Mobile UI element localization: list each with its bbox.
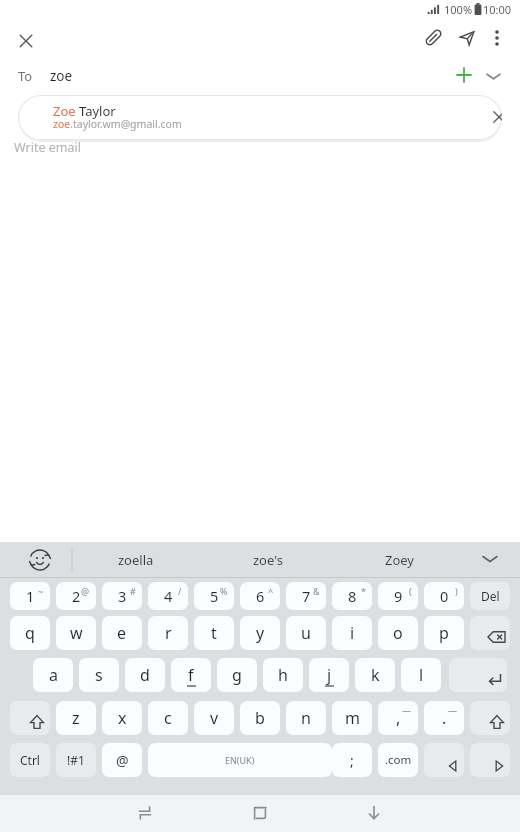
button[interactable]: Zoe Taylor (18, 95, 502, 140)
button[interactable] (485, 24, 509, 52)
staticText: t (211, 622, 217, 644)
button[interactable]: k (355, 658, 395, 692)
button[interactable]: Del (470, 582, 510, 610)
button[interactable]: 8 (332, 582, 372, 610)
button[interactable]: e (102, 616, 142, 650)
staticText: zoe (50, 67, 73, 85)
staticText: ) (455, 585, 458, 597)
button[interactable]: zoella (80, 542, 192, 577)
button[interactable] (480, 61, 506, 89)
button[interactable]: y (240, 616, 280, 650)
button[interactable]: p (424, 616, 464, 650)
button[interactable]: Ctrl (10, 743, 50, 777)
button[interactable]: g (217, 658, 257, 692)
button[interactable] (470, 616, 510, 650)
staticText: 6 (256, 586, 265, 606)
staticText: — (402, 704, 412, 716)
button[interactable]: r (148, 616, 188, 650)
staticText: ( (409, 585, 412, 597)
staticText: a (49, 664, 58, 686)
staticText: g (232, 664, 242, 686)
staticText: 10:00 (483, 2, 512, 17)
staticText: 1 (26, 586, 35, 606)
staticText: 100% (444, 2, 473, 17)
staticText: EN(UK) (225, 754, 255, 766)
button[interactable]: Zoey (344, 542, 456, 577)
button[interactable]: !#1 (56, 743, 96, 777)
button[interactable]: 1 (10, 582, 50, 610)
button[interactable] (244, 797, 276, 829)
button[interactable]: ; (332, 743, 372, 777)
button[interactable]: s (79, 658, 119, 692)
button[interactable]: j (309, 658, 349, 692)
button[interactable]: 0 (424, 582, 464, 610)
staticText: d (140, 664, 150, 686)
staticText: x (118, 707, 127, 729)
staticText: . (442, 707, 447, 729)
staticText: 4 (164, 586, 173, 606)
button[interactable]: z (56, 701, 96, 735)
button[interactable] (358, 797, 390, 829)
button[interactable] (470, 542, 510, 577)
button[interactable]: w (56, 616, 96, 650)
staticText: b (255, 707, 265, 729)
button[interactable] (470, 743, 510, 777)
button[interactable]: .com (378, 743, 418, 777)
button[interactable] (424, 743, 464, 777)
staticText: ~ (38, 585, 44, 597)
button[interactable]: @ (102, 743, 142, 777)
button[interactable]: u (286, 616, 326, 650)
staticText: 7 (302, 586, 311, 606)
button[interactable]: b (240, 701, 280, 735)
button[interactable]: v (194, 701, 234, 735)
button[interactable] (129, 797, 161, 829)
button[interactable]: n (286, 701, 326, 735)
button[interactable] (485, 103, 502, 131)
button[interactable]: a (33, 658, 73, 692)
button[interactable]: f (171, 658, 211, 692)
staticText: 9 (394, 586, 403, 606)
button[interactable]: 4 (148, 582, 188, 610)
button[interactable] (419, 24, 447, 52)
staticText: 5 (210, 586, 219, 606)
button[interactable]: EN(UK) (148, 743, 332, 777)
button[interactable]: , (378, 701, 418, 735)
button[interactable]: 6 (240, 582, 280, 610)
button[interactable]: l (401, 658, 441, 692)
button[interactable] (10, 701, 50, 735)
staticText: & (313, 585, 320, 597)
button[interactable]: 5 (194, 582, 234, 610)
button[interactable]: 7 (286, 582, 326, 610)
staticText: .com (385, 752, 412, 768)
button[interactable] (449, 658, 507, 692)
staticText: s (95, 664, 103, 686)
staticText: 0 (440, 586, 449, 606)
button[interactable]: zoe's (212, 542, 324, 577)
button[interactable]: o (378, 616, 418, 650)
button[interactable] (453, 24, 481, 52)
button[interactable] (18, 544, 62, 576)
staticText: y (256, 622, 265, 644)
button[interactable]: d (125, 658, 165, 692)
button[interactable]: . (424, 701, 464, 735)
button[interactable] (470, 701, 510, 735)
staticText: i (350, 622, 355, 644)
button[interactable]: c (148, 701, 188, 735)
button[interactable]: 9 (378, 582, 418, 610)
button[interactable]: x (102, 701, 142, 735)
button[interactable]: 3 (102, 582, 142, 610)
button[interactable]: h (263, 658, 303, 692)
button[interactable] (450, 61, 478, 89)
staticText: / (178, 585, 182, 597)
button[interactable]: m (332, 701, 372, 735)
staticText: w (70, 622, 83, 644)
button[interactable]: q (10, 616, 50, 650)
button[interactable]: 2 (56, 582, 96, 610)
button[interactable]: t (194, 616, 234, 650)
staticText: j (327, 664, 332, 686)
staticText: Write email (14, 139, 81, 156)
staticText: zoella (118, 551, 154, 569)
button[interactable]: i (332, 616, 372, 650)
staticText: o (393, 622, 403, 644)
button[interactable] (8, 24, 38, 54)
